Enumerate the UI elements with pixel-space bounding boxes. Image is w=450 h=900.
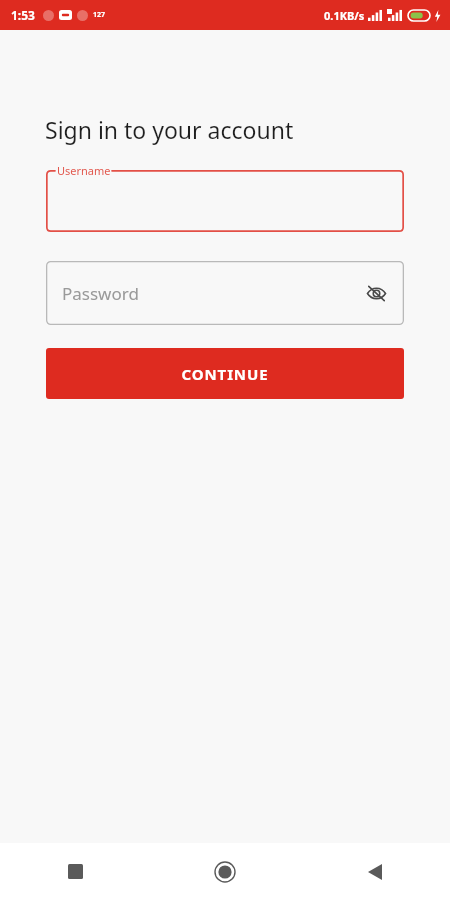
button[interactable]: CONTINUE: [46, 348, 404, 399]
staticText: Sign in to your account: [45, 114, 294, 145]
staticText: Username: [57, 163, 111, 178]
button[interactable]: Password: [46, 261, 404, 325]
staticText: 127: [93, 10, 106, 20]
staticText: CONTINUE: [181, 364, 269, 384]
staticText: 0.1KB/s: [324, 8, 365, 23]
button[interactable]: Home: [150, 843, 300, 900]
staticText: Password: [62, 282, 139, 305]
button[interactable]: Back: [300, 843, 450, 900]
button[interactable]: Username: [46, 170, 404, 232]
button[interactable]: Recents: [0, 843, 150, 900]
staticText: 1:53: [11, 7, 35, 23]
button[interactable]: Show password: [358, 275, 394, 311]
